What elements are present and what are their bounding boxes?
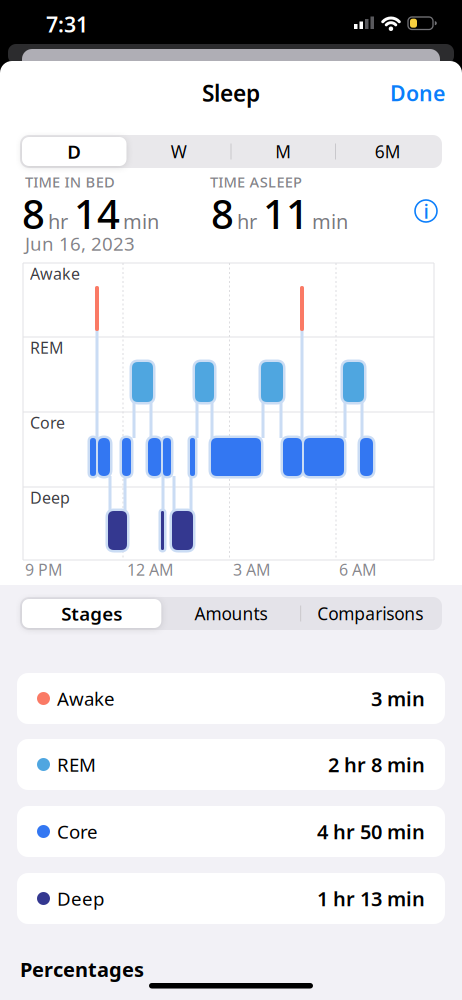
staticText: D (67, 139, 81, 164)
button[interactable]: REM (17, 739, 445, 790)
staticText: hr (237, 208, 257, 235)
staticText: W (171, 140, 187, 163)
button[interactable]: 6M (335, 135, 440, 168)
staticText: REM (30, 337, 64, 358)
button[interactable]: Amounts (161, 597, 301, 630)
staticText: REM (57, 752, 96, 777)
staticText: 3 AM (233, 559, 271, 580)
button[interactable]: Awake (17, 673, 445, 724)
staticText: 6 AM (339, 559, 377, 580)
staticText: M (275, 140, 291, 163)
staticText: 3 min (371, 685, 425, 712)
staticText: Awake (30, 263, 80, 284)
staticText: Sleep (202, 78, 260, 108)
staticText: Amounts (194, 602, 267, 625)
staticText: 14 (74, 187, 120, 240)
staticText: 9 PM (25, 559, 63, 580)
staticText: i (423, 198, 428, 224)
staticText: 8 (211, 187, 234, 240)
button[interactable]: Deep (17, 873, 445, 924)
staticText: TIME IN BED (25, 172, 115, 191)
button[interactable]: Done (390, 78, 445, 108)
staticText: 1 hr 13 min (317, 885, 425, 912)
button[interactable]: W (126, 135, 231, 168)
staticText: min (312, 208, 348, 235)
button[interactable]: Stages (22, 597, 161, 630)
staticText: Awake (57, 686, 115, 711)
button[interactable]: Core (17, 806, 445, 857)
staticText: 2 hr 8 min (328, 751, 425, 778)
staticText: 11 (263, 187, 309, 240)
staticText: Comparisons (317, 602, 423, 625)
staticText: Percentages (20, 956, 144, 983)
button[interactable]: Comparisons (301, 597, 440, 630)
staticText: 4 hr 50 min (317, 818, 425, 845)
staticText: Stages (61, 601, 122, 626)
staticText: hr (48, 208, 68, 235)
button[interactable]: i (415, 200, 437, 222)
staticText: 6M (375, 140, 401, 163)
button[interactable]: D (22, 135, 126, 168)
staticText: TIME ASLEEP (210, 172, 302, 191)
staticText: Core (30, 412, 65, 433)
staticText: 8 (22, 187, 45, 240)
staticText: Deep (30, 487, 70, 508)
staticText: Jun 16, 2023 (25, 231, 135, 256)
staticText: Core (57, 819, 98, 844)
staticText: Done (390, 79, 445, 107)
staticText: 12 AM (127, 559, 174, 580)
staticText: Deep (57, 886, 104, 911)
staticText: 7:31 (46, 10, 88, 38)
button[interactable]: M (231, 135, 335, 168)
staticText: min (123, 208, 159, 235)
